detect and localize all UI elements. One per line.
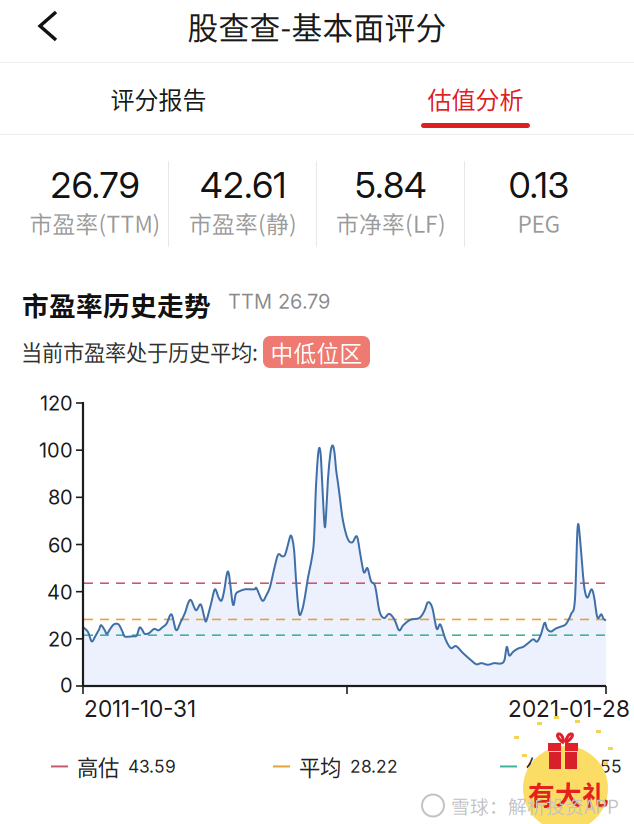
staticText: 100 [39,438,73,462]
staticText: 42.61 [200,163,286,207]
staticText: 80 [48,485,73,509]
staticText: 股查查-基本面评分 [187,4,446,48]
staticText: 0.13 [508,163,569,207]
staticText: 市盈率(TTM) [29,207,160,239]
staticText: 市盈率历史走势 [22,285,211,324]
staticText: 雪球：解析投资APP [451,792,619,819]
staticText: 120 [40,391,73,415]
button[interactable]: 返回 [23,1,73,51]
button[interactable]: 估值分析 [317,63,634,134]
staticText: 26.79 [50,163,139,207]
staticText: 2011-10-31 [84,695,196,722]
staticText: 估值分析 [427,81,523,116]
button[interactable]: 评分报告 [0,63,317,134]
staticText: TTM 26.79 [228,289,330,314]
staticText: 中低位区 [270,336,362,368]
staticText: PEG [517,207,560,239]
staticText: 市盈率(静) [189,207,297,239]
staticText: 2021-01-28 [508,695,630,722]
staticText: 28.22 [350,756,398,777]
staticText: 43.59 [128,756,176,777]
staticText: 5.84 [355,163,427,207]
staticText: 市净率(LF) [336,207,446,239]
staticText: 20 [48,627,73,651]
staticText: 40 [47,580,73,604]
staticText: 60 [48,533,73,557]
staticText: 0 [60,673,73,697]
staticText: 21.55 [577,756,622,777]
staticText: 低估 [526,751,568,782]
staticText: 有大礼 [528,774,609,813]
staticText: 平均 [299,751,341,782]
staticText: 高估 [77,751,119,782]
staticText: 评分报告 [110,81,206,116]
staticText: 当前市盈率处于历史平均: [21,336,258,367]
